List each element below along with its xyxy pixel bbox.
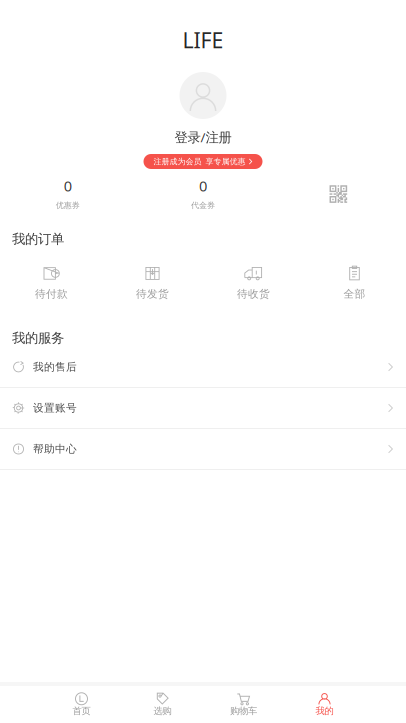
button[interactable]: 待发货 (102, 263, 203, 303)
button[interactable]: 待收货 (203, 263, 304, 303)
button[interactable]: 选购 (122, 686, 203, 722)
staticText: 登录/注册 (174, 128, 231, 146)
staticText: 我的 (315, 705, 333, 717)
button[interactable]: 0 (0, 176, 135, 214)
button[interactable]: 全部 (304, 263, 405, 303)
button[interactable]: 帮助中心 (0, 429, 406, 469)
staticText: LIFE (182, 26, 223, 54)
button[interactable]: 购物车 (203, 686, 284, 722)
staticText: 待发货 (136, 287, 169, 300)
staticText: 首页 (72, 705, 90, 717)
staticText: 待付款 (35, 287, 68, 300)
staticText: 注册成为会员 享专属优惠 (153, 157, 245, 166)
button[interactable]: 登录/注册 (174, 119, 231, 144)
staticText: 优惠券 (56, 200, 80, 210)
staticText: 0 (199, 176, 207, 195)
staticText: 我的订单 (12, 231, 64, 247)
button[interactable]: 0 (135, 176, 271, 214)
button[interactable]: 注册成为会员 享专属优惠 (143, 144, 262, 169)
button[interactable]: 我的售后 (0, 347, 406, 387)
staticText: 我的售后 (33, 360, 77, 373)
staticText: 全部 (343, 287, 365, 300)
staticText: 帮助中心 (33, 442, 77, 455)
staticText: 待收货 (237, 287, 270, 300)
staticText: 购物车 (230, 705, 257, 717)
button[interactable]: 首页 (41, 686, 122, 722)
button[interactable]: 扫一扫 (271, 176, 406, 214)
button[interactable]: 我的 (284, 686, 365, 722)
button[interactable]: 待付款 (1, 263, 102, 303)
staticText: 代金券 (191, 200, 215, 210)
staticText: 设置账号 (33, 401, 77, 414)
button[interactable]: 设置账号 (0, 388, 406, 428)
staticText: 0 (64, 176, 72, 195)
staticText: 我的服务 (12, 330, 64, 346)
staticText: 选购 (153, 705, 171, 717)
